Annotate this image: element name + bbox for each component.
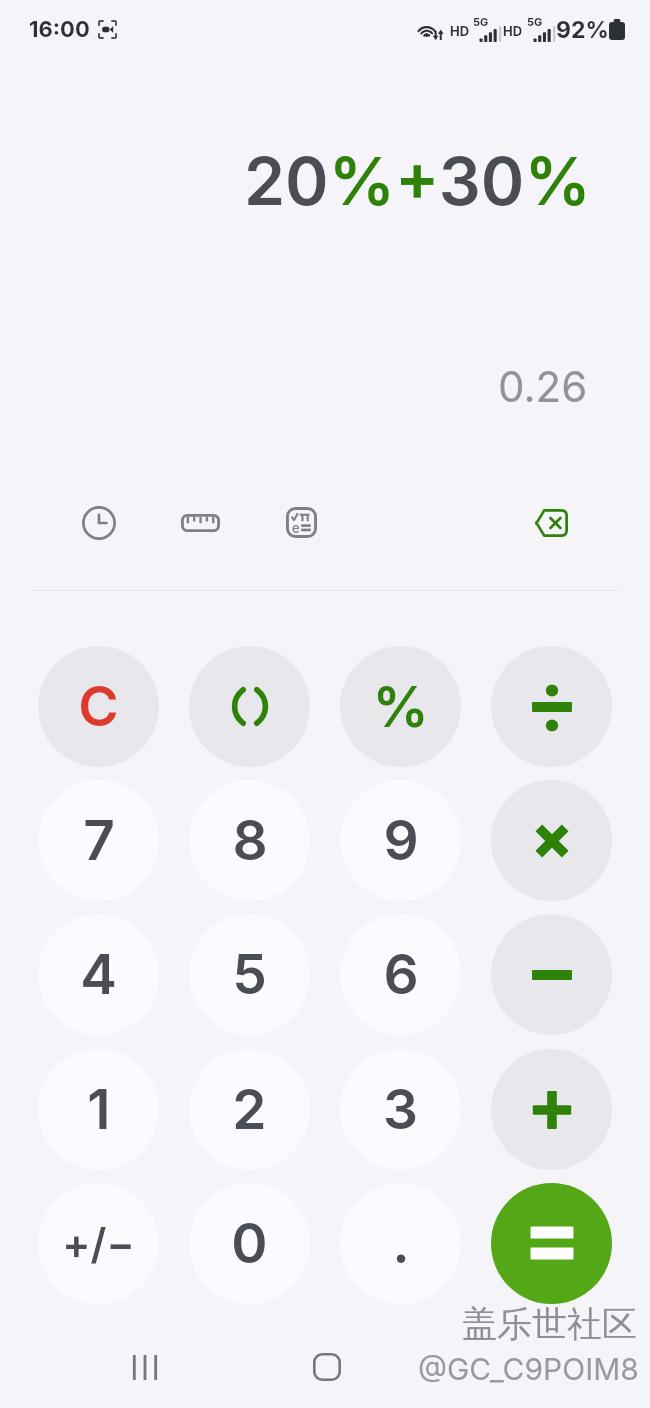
staticText: %: [372, 673, 429, 741]
button[interactable]: Scientific calculator: [274, 495, 329, 550]
staticText: 4: [80, 941, 117, 1008]
button[interactable]: 7: [38, 780, 159, 901]
staticText: C: [78, 673, 119, 740]
button[interactable]: 5: [189, 914, 310, 1035]
staticText: 0: [231, 1210, 268, 1277]
staticText: e: [292, 520, 300, 536]
staticText: 92%: [556, 16, 609, 44]
staticText: 5G: [527, 15, 543, 28]
staticText: HD: [503, 23, 523, 39]
button[interactable]: Plus minus: [38, 1183, 159, 1304]
button[interactable]: 8: [189, 780, 310, 901]
button[interactable]: 1: [38, 1049, 159, 1170]
button[interactable]: Unit converter: [173, 495, 228, 550]
staticText: @GC_C9POIM8: [418, 1351, 639, 1387]
button[interactable]: 6: [340, 914, 461, 1035]
button[interactable]: 4: [38, 914, 159, 1035]
button[interactable]: 2: [189, 1049, 310, 1170]
button[interactable]: Clear: [38, 646, 159, 767]
staticText: 1: [87, 1076, 111, 1143]
button[interactable]: Decimal point: [340, 1183, 461, 1304]
button[interactable]: 3: [340, 1049, 461, 1170]
staticText: 20%+30%: [244, 141, 591, 221]
staticText: 盖乐世社区: [462, 1302, 637, 1346]
button[interactable]: Percent: [340, 646, 461, 767]
button[interactable]: Minus: [491, 914, 612, 1035]
staticText: 8: [232, 807, 268, 874]
button[interactable]: Divide: [491, 646, 612, 767]
staticText: 2: [232, 1076, 267, 1143]
staticText: +/−: [62, 1218, 135, 1269]
button[interactable]: Backspace: [523, 495, 578, 550]
button[interactable]: Home: [300, 1340, 354, 1394]
button[interactable]: History: [71, 495, 126, 550]
button[interactable]: Recents: [118, 1340, 172, 1394]
button[interactable]: Multiply: [491, 780, 612, 901]
staticText: 3: [383, 1076, 418, 1143]
staticText: 16:00: [29, 16, 90, 43]
staticText: HD: [450, 23, 470, 39]
staticText: 7: [83, 807, 115, 874]
button[interactable]: Parentheses: [189, 646, 310, 767]
staticText: 5: [232, 941, 267, 1008]
staticText: 9: [383, 807, 419, 874]
staticText: 6: [383, 941, 419, 1008]
staticText: .: [392, 1210, 410, 1277]
staticText: 0.26: [498, 361, 588, 412]
button[interactable]: 9: [340, 780, 461, 901]
button[interactable]: 0: [189, 1183, 310, 1304]
button[interactable]: Equals: [491, 1183, 612, 1304]
staticText: 5G: [473, 15, 489, 28]
button[interactable]: Plus: [491, 1049, 612, 1170]
